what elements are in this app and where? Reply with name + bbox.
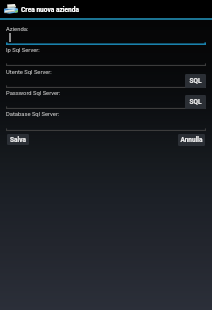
- staticText: Azienda:: [6, 26, 29, 33]
- other: App icon: [4, 4, 18, 14]
- staticText: Utente Sql Server:: [6, 69, 52, 76]
- staticText: Crea nuova azienda: [21, 6, 80, 14]
- staticText: Database Sql Server:: [6, 111, 60, 118]
- button[interactable]: Salva: [7, 134, 29, 145]
- button[interactable]: App icon: [0, 0, 212, 18]
- staticText: Salva: [10, 136, 26, 144]
- staticText: Ip Sql Server:: [6, 47, 40, 54]
- staticText: Password Sql Server:: [6, 90, 61, 97]
- staticText: Annulla: [180, 136, 203, 144]
- button[interactable]: SQL: [185, 74, 206, 88]
- staticText: SQL: [189, 98, 202, 106]
- button[interactable]: SQL: [185, 95, 206, 109]
- button[interactable]: Annulla: [178, 134, 205, 146]
- staticText: SQL: [189, 77, 202, 85]
